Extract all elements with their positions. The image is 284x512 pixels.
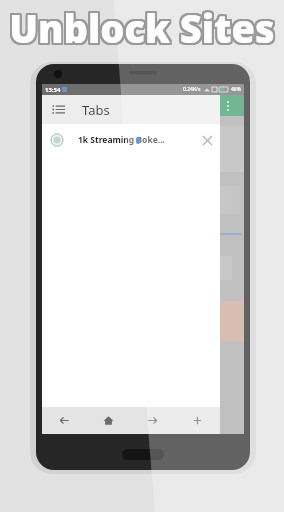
staticText: Unblock Sites (10, 1, 276, 53)
staticText: 13:54 (45, 86, 61, 94)
staticText: Unblock Sites (10, 2, 276, 54)
staticText: Unblock Sites (9, 0, 275, 52)
button[interactable]: New tab (175, 407, 220, 434)
staticText: Unblock Sites (8, 3, 274, 55)
staticText: Unblock Sites (7, 1, 273, 53)
staticText: Unblock Sites (11, 2, 277, 54)
staticText: 46% (231, 86, 241, 93)
button[interactable]: Back (42, 407, 86, 434)
staticText: Unblock Sites (11, 3, 277, 55)
staticText: Unblock Sites (8, 2, 274, 54)
button[interactable]: 1k Streaming Boke... (42, 124, 220, 156)
staticText: Unblock Sites (10, 3, 276, 55)
staticText: Unblock Sites (11, 4, 277, 56)
staticText: Unblock Sites (8, 1, 274, 53)
staticText: Unblock Sites (11, 0, 277, 52)
staticText: 1k Streaming Boke... (78, 134, 165, 146)
button[interactable]: Home (86, 407, 130, 434)
staticText: Unblock Sites (7, 0, 273, 52)
button[interactable]: Tab list (42, 95, 220, 124)
staticText: Unblock Sites (11, 1, 277, 53)
staticText: 0.24K/s (183, 86, 201, 93)
staticText: Unblock Sites (9, 4, 275, 56)
staticText: Unblock Sites (7, 2, 273, 54)
staticText: Unblock Sites (9, 2, 275, 54)
button[interactable]: More options (221, 99, 235, 113)
button[interactable]: Tab list (52, 103, 65, 116)
staticText: Unblock Sites (9, 3, 275, 55)
staticText: Tabs (82, 101, 110, 119)
staticText: Unblock Sites (8, 0, 274, 52)
staticText: Unblock Sites (10, 0, 276, 52)
staticText: Unblock Sites (7, 4, 273, 56)
button[interactable]: Close tab (198, 131, 216, 149)
button[interactable]: Forward (130, 407, 175, 434)
staticText: Unblock Sites (8, 4, 274, 56)
staticText: Unblock Sites (7, 3, 273, 55)
staticText: Unblock Sites (10, 4, 276, 56)
staticText: Unblock Sites (9, 1, 275, 53)
